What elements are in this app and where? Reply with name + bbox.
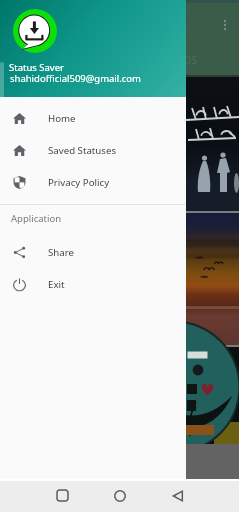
staticText: Saved Statuses — [48, 144, 117, 157]
button[interactable]: Recents — [44, 480, 81, 511]
staticText: Share — [48, 246, 75, 259]
button[interactable]: Share — [0, 236, 186, 268]
staticText: IMAGES — [41, 53, 79, 67]
button[interactable]: VIDEOS — [119, 45, 239, 75]
staticText: Application — [11, 212, 62, 225]
staticText: Exit — [48, 278, 65, 291]
staticText: Home — [48, 112, 76, 125]
button[interactable]: Saved Statuses — [0, 134, 186, 166]
button[interactable]: Exit — [0, 268, 186, 300]
staticText: shahidofficial509@gmail.com — [10, 72, 141, 85]
staticText: Privacy Policy — [48, 176, 110, 189]
button[interactable]: Back — [159, 480, 196, 511]
button[interactable]: IMAGES — [0, 45, 119, 75]
button[interactable]: Privacy Policy — [0, 166, 186, 198]
button[interactable]: Home — [101, 480, 138, 511]
staticText: Status Saver — [47, 20, 118, 36]
button[interactable]: Home — [0, 102, 186, 134]
button[interactable]: More options — [216, 16, 234, 34]
staticText: Status Saver — [9, 61, 64, 74]
staticText: VIDEOS — [161, 53, 197, 67]
